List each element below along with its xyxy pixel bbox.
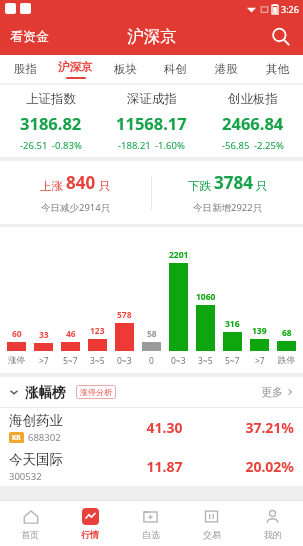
staticText: 创业板指 <box>228 91 278 107</box>
staticText: 3784 <box>214 171 253 194</box>
button[interactable]: 139 <box>246 325 273 351</box>
staticText: 只 <box>96 178 111 194</box>
staticText: 2466.84 <box>222 112 284 134</box>
staticText: 5~7 <box>63 355 78 367</box>
staticText: 跌停 <box>278 355 295 366</box>
staticText: 今天国际 <box>9 451 63 468</box>
button[interactable]: 下跌 <box>152 161 303 224</box>
staticText: 20.02% <box>204 457 294 476</box>
staticText: 2201 <box>169 249 189 261</box>
button[interactable]: 2201 <box>165 249 192 351</box>
staticText: 自选 <box>142 529 160 540</box>
staticText: 3186.82 <box>20 112 82 134</box>
button[interactable]: 我的 <box>242 501 303 546</box>
staticText: 688302 <box>28 431 61 444</box>
staticText: 其他 <box>266 62 289 76</box>
staticText: -56.85 <box>222 139 250 152</box>
button[interactable]: 首页 <box>0 501 60 546</box>
staticText: 只 <box>253 178 268 194</box>
staticText: 下跌 <box>188 178 214 194</box>
staticText: -26.51 <box>20 139 48 152</box>
staticText: 60 <box>12 328 22 340</box>
button[interactable]: 交易 <box>181 501 242 546</box>
staticText: 深证成指 <box>127 91 177 107</box>
staticText: 行情 <box>81 529 99 540</box>
staticText: 0~3 <box>171 355 186 367</box>
staticText: 首页 <box>21 529 39 540</box>
staticText: 3:26 <box>281 3 299 15</box>
staticText: 46 <box>66 328 76 340</box>
staticText: 0~3 <box>117 355 132 367</box>
staticText: KR <box>12 433 21 442</box>
button[interactable]: 上证指数 <box>0 85 101 157</box>
staticText: 涨停 <box>8 355 25 366</box>
staticText: -188.21 <box>118 139 151 152</box>
button[interactable]: 涨幅榜 <box>0 377 303 407</box>
button[interactable]: 创业板指 <box>202 85 303 157</box>
button[interactable]: 1060 <box>192 291 219 351</box>
staticText: 1060 <box>196 291 216 303</box>
staticText: 科创 <box>164 62 187 76</box>
staticText: 58 <box>147 328 157 340</box>
staticText: 123 <box>90 325 105 337</box>
button[interactable]: 今天国际 <box>0 447 303 486</box>
button[interactable]: 海创药业 <box>0 408 303 447</box>
staticText: 沪深京 <box>58 60 93 74</box>
button[interactable]: 股指 <box>0 55 50 83</box>
button[interactable]: 33 <box>30 329 57 351</box>
staticText: 上涨 <box>40 178 66 194</box>
staticText: 5~7 <box>225 355 240 367</box>
button[interactable]: 其他 <box>252 55 303 83</box>
button[interactable]: 看资金 <box>8 24 51 48</box>
staticText: 11568.17 <box>116 112 187 134</box>
staticText: -0.83% <box>52 139 82 152</box>
button[interactable]: 60 <box>3 328 30 351</box>
button[interactable]: 58 <box>138 328 165 351</box>
staticText: 港股 <box>215 62 238 76</box>
staticText: 今日新增2922只 <box>193 201 263 214</box>
button[interactable]: 自选 <box>120 501 181 546</box>
button[interactable]: 沪深京 <box>50 55 100 83</box>
staticText: 海创药业 <box>9 412 63 429</box>
button[interactable]: 深证成指 <box>101 85 202 157</box>
staticText: 33 <box>39 329 49 341</box>
button[interactable]: Search <box>266 22 294 50</box>
button[interactable]: 316 <box>219 318 246 351</box>
staticText: 316 <box>225 318 240 330</box>
staticText: 578 <box>117 309 132 321</box>
button[interactable]: 行情 <box>60 501 120 546</box>
staticText: 股指 <box>14 62 37 76</box>
button[interactable]: 更多 <box>261 385 294 399</box>
staticText: 看资金 <box>10 28 49 44</box>
button[interactable]: 上涨 <box>0 161 151 224</box>
button[interactable]: 板块 <box>100 55 150 83</box>
staticText: 交易 <box>203 529 221 540</box>
staticText: 300532 <box>9 470 42 483</box>
button[interactable]: 涨停分析 <box>76 385 116 399</box>
staticText: 涨停分析 <box>80 387 112 397</box>
staticText: -1.60% <box>155 139 185 152</box>
staticText: 11.87 <box>125 457 204 476</box>
staticText: 3~5 <box>198 355 213 367</box>
staticText: 更多 <box>261 385 283 399</box>
staticText: 0 <box>149 355 154 367</box>
staticText: 3~5 <box>90 355 105 367</box>
staticText: 139 <box>252 325 267 337</box>
staticText: 沪深京 <box>127 26 177 47</box>
button[interactable]: 科创 <box>150 55 201 83</box>
button[interactable]: 578 <box>111 309 138 351</box>
staticText: >7 <box>39 355 49 367</box>
staticText: 涨幅榜 <box>25 384 66 401</box>
button[interactable]: 123 <box>84 325 111 351</box>
button[interactable]: 68 <box>273 327 300 351</box>
staticText: 37.21% <box>204 418 294 437</box>
staticText: 今日减少2914只 <box>41 201 111 214</box>
staticText: 41.30 <box>125 418 204 437</box>
button[interactable]: 46 <box>57 328 84 351</box>
staticText: -2.25% <box>254 139 284 152</box>
staticText: >7 <box>255 355 265 367</box>
staticText: 上证指数 <box>26 91 76 107</box>
staticText: 68 <box>282 327 292 339</box>
staticText: 板块 <box>114 62 137 76</box>
button[interactable]: 港股 <box>201 55 252 83</box>
